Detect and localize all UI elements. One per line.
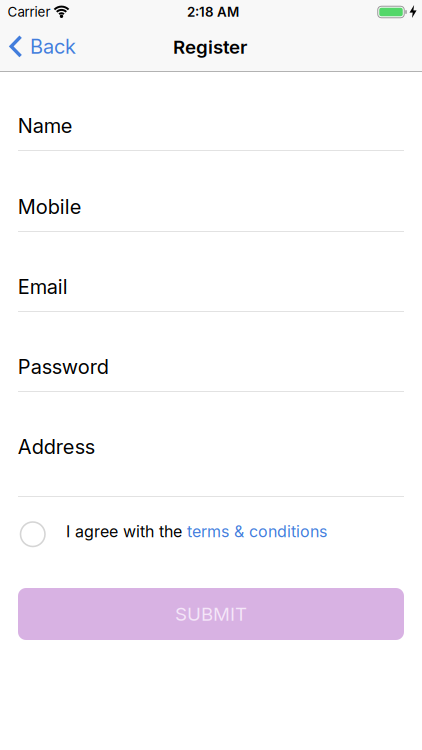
staticText: Email <box>18 275 68 299</box>
button[interactable]: I agree with the terms & conditions <box>20 522 45 546</box>
staticText: Password <box>18 355 109 379</box>
staticText: Name <box>18 114 73 138</box>
button[interactable]: terms & conditions <box>187 522 327 541</box>
staticText: terms & conditions <box>187 522 327 541</box>
staticText: 2:18 AM <box>187 4 239 20</box>
staticText: Carrier <box>7 4 50 20</box>
staticText: I agree with the <box>66 522 187 541</box>
staticText: Back <box>30 35 76 58</box>
button[interactable]: SUBMIT <box>18 588 404 640</box>
staticText: Address <box>18 435 95 459</box>
staticText: Mobile <box>18 195 82 219</box>
button[interactable]: Back <box>10 35 76 58</box>
staticText: SUBMIT <box>175 603 247 625</box>
staticText: Register <box>173 36 247 58</box>
